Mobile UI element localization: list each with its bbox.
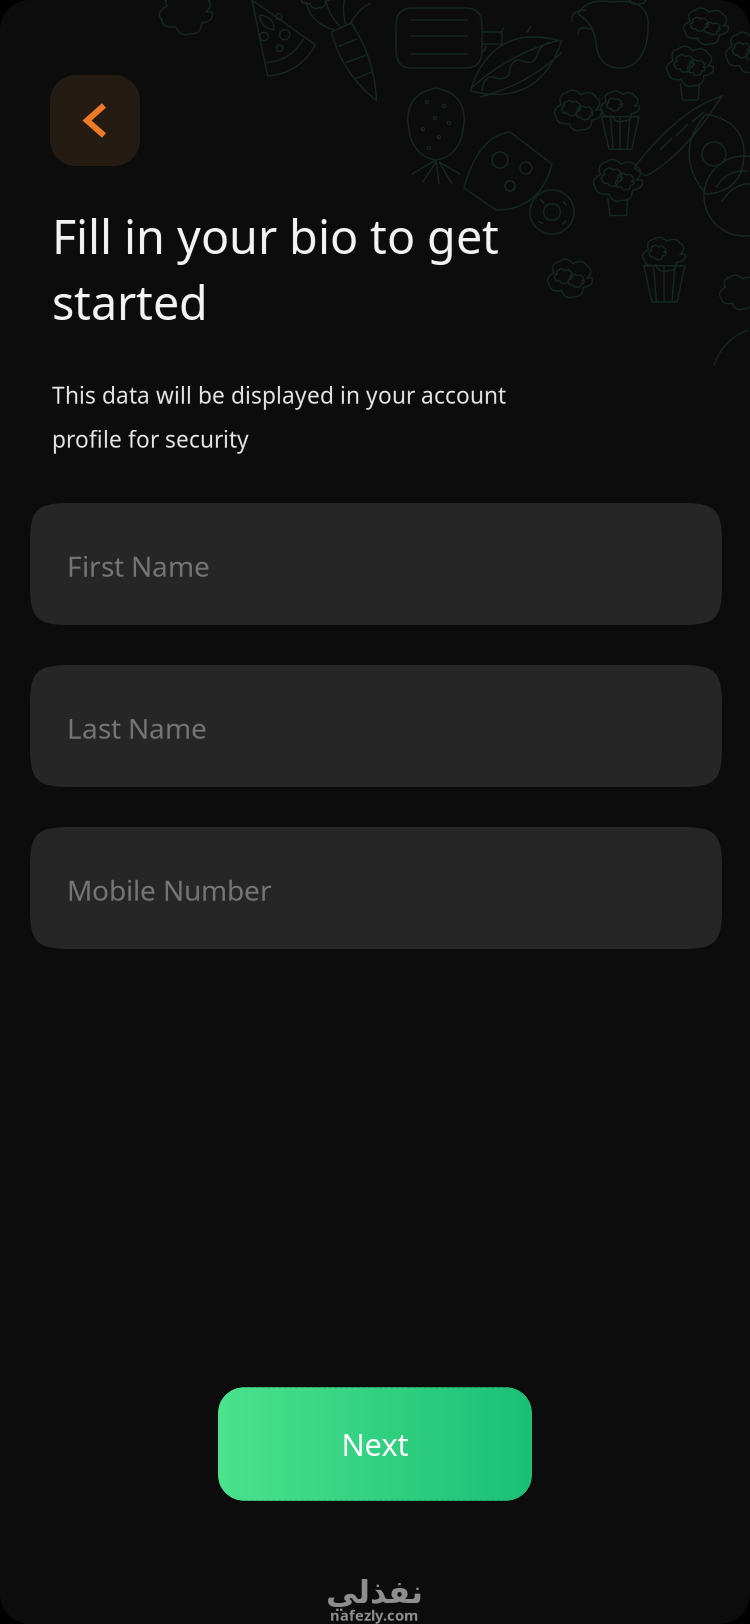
staticText: nafezly.com [330, 1605, 418, 1624]
staticText: Mobile Number [67, 871, 272, 909]
staticText: Next [341, 1424, 408, 1464]
staticText: profile for security [52, 424, 249, 454]
staticText: This data will be displayed in your acco… [52, 380, 506, 410]
button[interactable]: Next [218, 1387, 532, 1500]
button[interactable]: Last Name [30, 665, 722, 787]
button[interactable]: Back [50, 75, 140, 166]
staticText: نفذلي [325, 1574, 422, 1610]
staticText: Last Name [67, 709, 207, 747]
staticText: First Name [67, 547, 210, 585]
staticText: Fill in your bio to get [52, 205, 499, 267]
button[interactable]: Mobile Number [30, 827, 722, 949]
button[interactable]: First Name [30, 503, 722, 625]
staticText: started [52, 271, 208, 333]
